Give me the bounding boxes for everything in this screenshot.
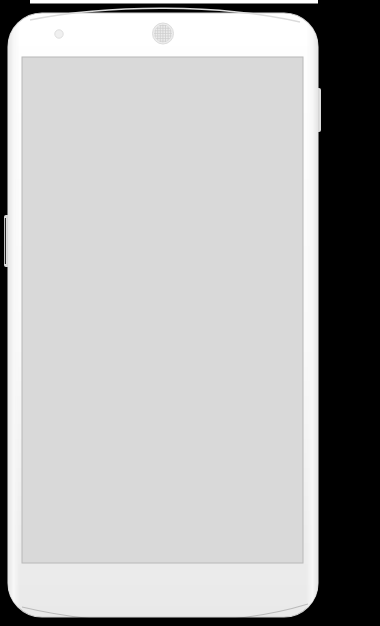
button[interactable]: Phone device mockup: [0, 0, 380, 626]
